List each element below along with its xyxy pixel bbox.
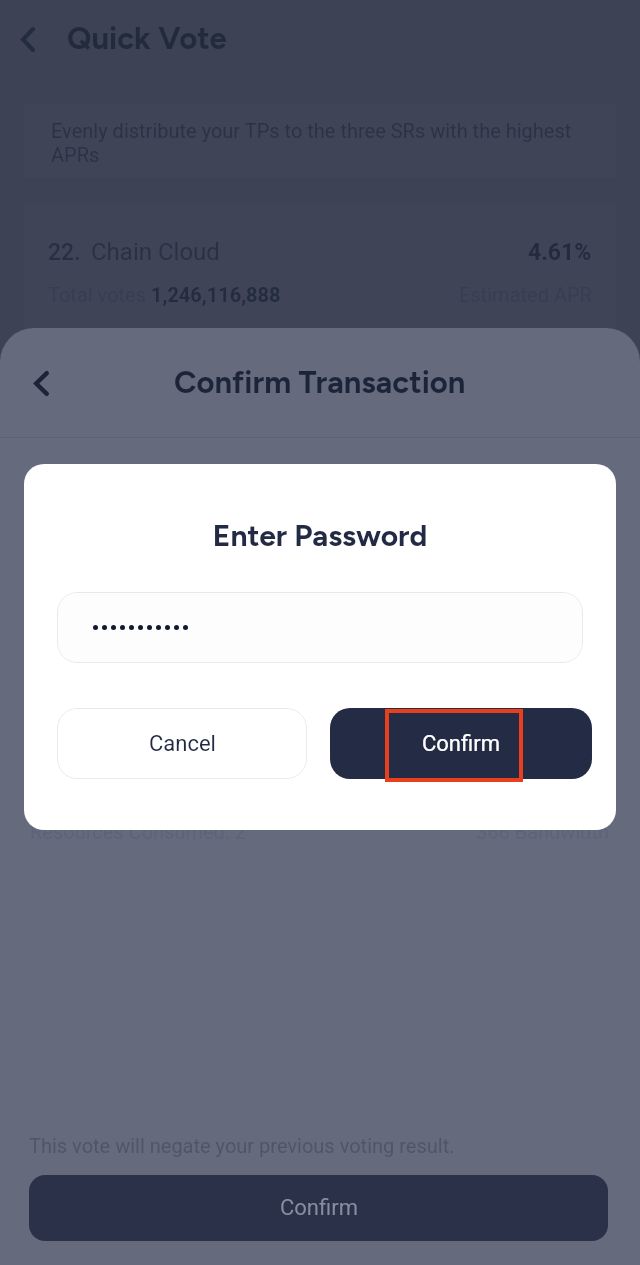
button[interactable]: Confirm (330, 708, 592, 779)
staticText: Confirm (280, 1195, 358, 1221)
staticText: Confirm Transaction (174, 364, 466, 401)
staticText: Resources Consumed: 2 (30, 820, 246, 843)
button[interactable]: Confirm (29, 1175, 608, 1241)
staticText: Evenly distribute your TPs to the three … (51, 119, 596, 167)
staticText: Quick Vote (67, 20, 227, 57)
staticText: 1,246,116,888 (151, 283, 281, 306)
staticText: 22. (48, 239, 81, 266)
staticText: 366 Bandwidth (476, 820, 610, 843)
staticText: This vote will negate your previous voti… (29, 1134, 455, 1157)
button[interactable]: Back (16, 358, 66, 408)
button[interactable]: Cancel (57, 708, 307, 779)
staticText: Chain Cloud (91, 238, 220, 266)
button[interactable]: Back (4, 13, 51, 65)
staticText: 4.61% (528, 239, 592, 266)
staticText: Confirm (422, 731, 500, 757)
staticText: Cancel (149, 731, 216, 757)
button[interactable] (57, 592, 583, 663)
staticText: Enter Password (24, 517, 616, 553)
